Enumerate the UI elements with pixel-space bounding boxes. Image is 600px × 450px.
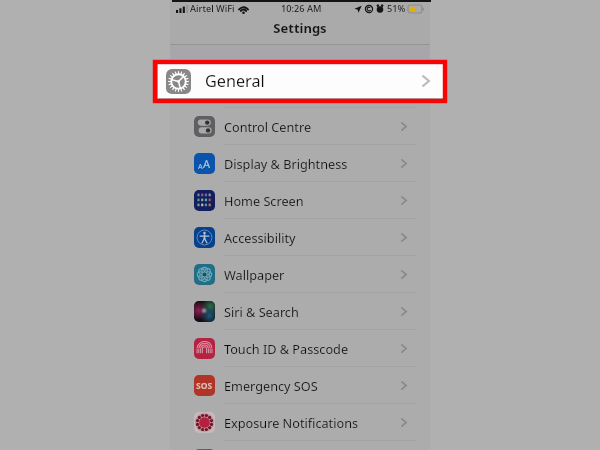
staticText: Airtel WiFi [190, 2, 235, 15]
staticText: 51% [387, 2, 406, 15]
button[interactable]: Battery [170, 441, 430, 450]
staticText: Home Screen [224, 192, 304, 209]
staticText: 10:26 AM [281, 2, 322, 15]
button[interactable]: Touch ID & Passcode [170, 330, 430, 366]
staticText: Exposure Notifications [224, 414, 359, 431]
button[interactable]: Wallpaper [170, 256, 430, 292]
staticText: SOS [196, 380, 213, 392]
button[interactable]: Home Screen [170, 182, 430, 218]
staticText: Control Centre [224, 118, 312, 135]
staticText: Siri & Search [224, 303, 299, 320]
staticText: Display & Brightness [224, 155, 348, 172]
staticText: Accessibility [224, 229, 296, 246]
staticText: A [203, 156, 211, 171]
staticText: Wallpaper [224, 266, 285, 283]
button[interactable]: Siri & Search [170, 293, 430, 329]
button[interactable]: Accessibility [170, 219, 430, 255]
button[interactable]: A [170, 145, 430, 181]
button[interactable]: General [158, 64, 443, 98]
staticText: Touch ID & Passcode [224, 340, 349, 357]
staticText: Settings [273, 19, 327, 37]
button[interactable]: Exposure Notifications [170, 404, 430, 440]
staticText: General [205, 70, 265, 92]
button[interactable]: SOS [170, 367, 430, 403]
staticText: A [198, 161, 203, 171]
staticText: Emergency SOS [224, 377, 318, 394]
button[interactable]: Control Centre [170, 108, 430, 144]
